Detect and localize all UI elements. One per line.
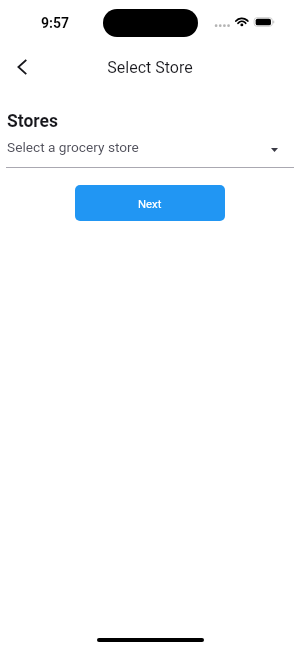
staticText: Select a grocery store xyxy=(7,139,139,155)
staticText: Select Store xyxy=(0,58,300,77)
staticText: Stores xyxy=(7,111,59,132)
staticText: Next xyxy=(138,198,162,211)
button[interactable]: Select a grocery store xyxy=(6,137,294,167)
button[interactable]: Next xyxy=(75,185,225,221)
staticText: 9:57 xyxy=(41,15,70,31)
button[interactable]: Back xyxy=(0,44,44,90)
